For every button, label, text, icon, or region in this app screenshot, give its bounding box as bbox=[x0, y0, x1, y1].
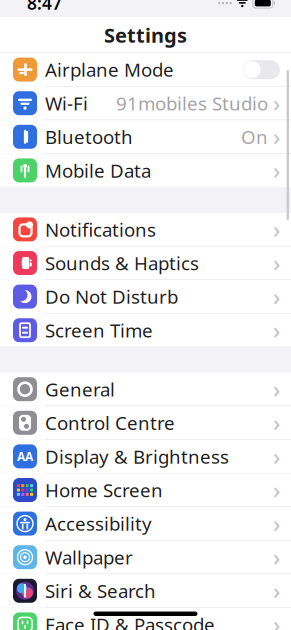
button[interactable]: Do Not Disturb bbox=[0, 280, 291, 313]
button[interactable]: Wi-Fi bbox=[0, 87, 291, 120]
staticText: Home Screen bbox=[45, 478, 163, 502]
button[interactable]: General bbox=[0, 373, 291, 406]
button[interactable]: Mobile Data bbox=[0, 154, 291, 187]
staticText: Bluetooth bbox=[45, 124, 133, 149]
staticText: › bbox=[273, 609, 280, 630]
button[interactable]: Accessibility bbox=[0, 507, 291, 540]
staticText: Notifications bbox=[45, 217, 156, 242]
staticText: Wallpaper bbox=[45, 545, 133, 570]
button[interactable]: Airplane Mode bbox=[0, 53, 291, 86]
staticText: Settings bbox=[104, 22, 187, 48]
button[interactable]: Notifications bbox=[0, 213, 291, 246]
staticText: › bbox=[273, 248, 280, 278]
staticText: Do Not Disturb bbox=[45, 284, 178, 309]
staticText: Control Centre bbox=[45, 410, 175, 435]
staticText: › bbox=[273, 441, 280, 471]
button[interactable]: Bluetooth bbox=[0, 120, 291, 153]
staticText: › bbox=[273, 281, 280, 312]
staticText: › bbox=[273, 214, 280, 244]
staticText: AA bbox=[17, 448, 33, 464]
button[interactable]: Siri & Search bbox=[0, 574, 291, 607]
staticText: Display & Brightness bbox=[45, 444, 229, 469]
button[interactable]: AA bbox=[0, 440, 291, 473]
staticText: › bbox=[273, 88, 280, 118]
staticText: Sounds & Haptics bbox=[45, 251, 199, 275]
staticText: › bbox=[273, 374, 280, 404]
staticText: Screen Time bbox=[45, 318, 153, 343]
button[interactable]: Wallpaper bbox=[0, 541, 291, 574]
button[interactable]: Face ID & Passcode bbox=[0, 608, 291, 630]
staticText: Airplane Mode bbox=[45, 57, 174, 82]
staticText: General bbox=[45, 377, 115, 402]
staticText: › bbox=[273, 408, 280, 438]
button[interactable]: Sounds & Haptics bbox=[0, 246, 291, 279]
button[interactable]: Home Screen bbox=[0, 473, 291, 506]
staticText: Siri & Search bbox=[45, 578, 156, 603]
staticText: 8:47 bbox=[27, 0, 62, 15]
staticText: Wi-Fi bbox=[45, 91, 88, 116]
staticText: › bbox=[273, 576, 280, 606]
staticText: On bbox=[241, 124, 268, 149]
staticText: Face ID & Passcode bbox=[45, 612, 215, 630]
staticText: › bbox=[273, 122, 280, 152]
staticText: › bbox=[273, 475, 280, 505]
button[interactable]: Control Centre bbox=[0, 406, 291, 439]
staticText: › bbox=[273, 508, 280, 539]
staticText: Mobile Data bbox=[45, 158, 151, 183]
staticText: › bbox=[273, 315, 280, 345]
staticText: › bbox=[273, 542, 280, 572]
staticText: › bbox=[273, 155, 280, 185]
button[interactable]: Screen Time bbox=[0, 314, 291, 347]
staticText: 91mobiles Studio bbox=[116, 91, 268, 116]
staticText: Accessibility bbox=[45, 511, 152, 536]
